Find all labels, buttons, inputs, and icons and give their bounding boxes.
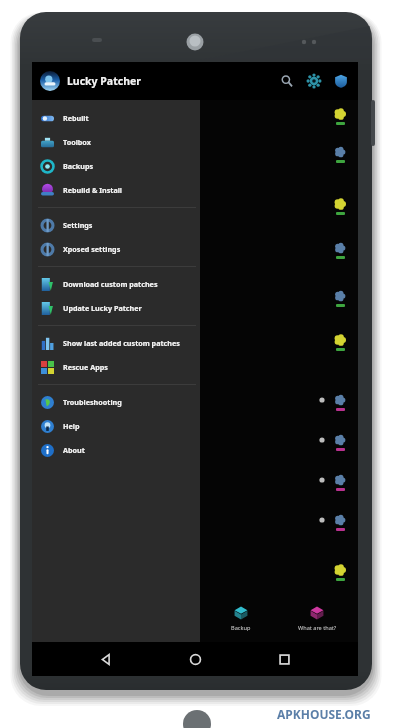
staticText: Xposed settings: [63, 244, 121, 254]
button[interactable]: Download custom patches: [32, 272, 200, 296]
staticText: Backup: [231, 624, 251, 632]
button[interactable]: Rebuild & Install: [32, 178, 200, 202]
button[interactable]: Settings: [32, 213, 200, 237]
button[interactable]: Lucky Patcher logo: [40, 71, 60, 91]
button[interactable]: Xposed settings: [32, 237, 200, 261]
staticText: Show last added custom patches: [63, 338, 180, 348]
button[interactable]: Search: [278, 72, 296, 90]
button[interactable]: Backups: [32, 154, 200, 178]
staticText: Download custom patches: [63, 279, 158, 289]
button[interactable]: What are that?: [281, 598, 353, 642]
staticText: Troubleshooting: [63, 397, 122, 407]
staticText: Settings: [63, 220, 93, 230]
staticText: Backups: [63, 161, 94, 171]
button[interactable]: Troubleshooting: [32, 390, 200, 414]
staticText: About: [63, 445, 85, 455]
button[interactable]: Back: [91, 644, 121, 674]
button[interactable]: Update Lucky Patcher: [32, 296, 200, 320]
button[interactable]: Toolbox: [32, 130, 200, 154]
staticText: Rescue Apps: [63, 362, 108, 372]
staticText: Rebuilt: [63, 113, 89, 123]
staticText: Help: [63, 421, 80, 431]
staticText: Rebuild & Install: [63, 185, 122, 195]
button[interactable]: Backup: [205, 598, 277, 642]
staticText: Lucky Patcher: [67, 74, 141, 88]
button[interactable]: Shield: [332, 72, 350, 90]
staticText: Update Lucky Patcher: [63, 303, 142, 313]
button[interactable]: About: [32, 438, 200, 462]
button[interactable]: Home: [180, 644, 210, 674]
button[interactable]: Rebuilt: [32, 106, 200, 130]
button[interactable]: Show last added custom patches: [32, 331, 200, 355]
staticText: Toolbox: [63, 137, 91, 147]
staticText: APKHOUSE.ORG: [277, 706, 371, 722]
button[interactable]: Settings: [305, 72, 323, 90]
button[interactable]: Recents: [269, 644, 299, 674]
button[interactable]: Rescue Apps: [32, 355, 200, 379]
staticText: What are that?: [298, 624, 337, 632]
button[interactable]: Help: [32, 414, 200, 438]
